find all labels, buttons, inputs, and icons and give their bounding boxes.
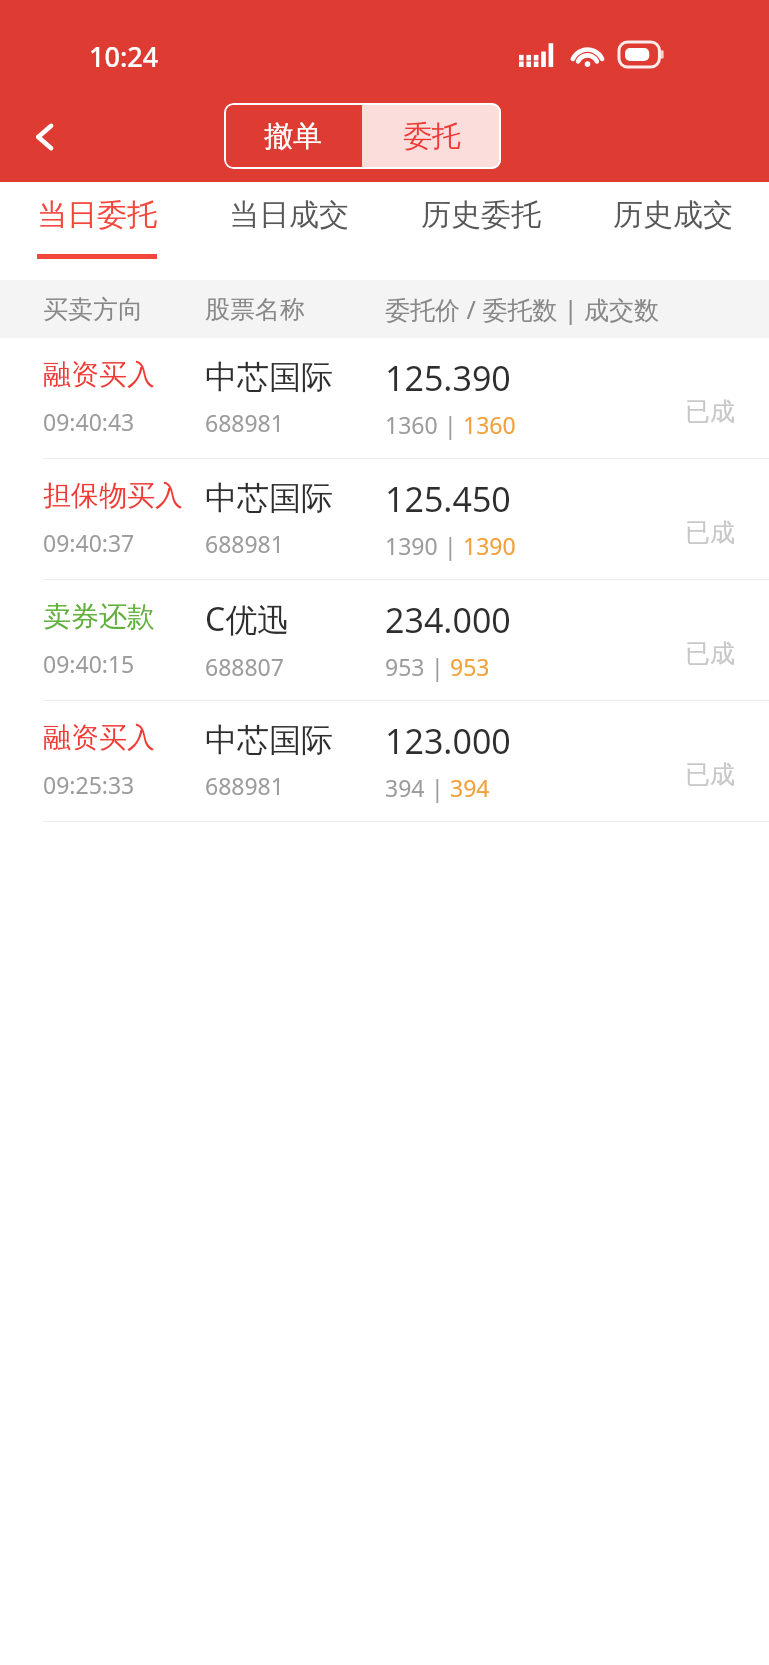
button[interactable]: 历史委托 [385, 182, 577, 280]
staticText: 已成 [685, 638, 735, 669]
staticText: 953 [385, 651, 425, 682]
staticText: 中芯国际 [205, 357, 333, 397]
staticText: 已成 [685, 517, 735, 548]
button[interactable]: 撤单 [224, 103, 362, 169]
staticText: 1360 [385, 409, 438, 440]
button[interactable]: 当日委托 [0, 182, 193, 280]
staticText: 688981 [205, 528, 284, 559]
staticText: 当日成交 [229, 196, 349, 234]
staticText: 买卖方向 [43, 294, 143, 325]
staticText: 已成 [685, 396, 735, 427]
staticText: 中芯国际 [205, 720, 333, 760]
staticText: 123.000 [385, 718, 511, 764]
staticText: 1390 [463, 530, 516, 561]
staticText: 当日委托 [37, 196, 157, 234]
button[interactable]: 融资买入 [0, 701, 769, 821]
staticText: 394 [450, 772, 490, 803]
button[interactable]: 历史成交 [577, 182, 769, 280]
button[interactable]: Back [16, 108, 74, 166]
staticText: 股票名称 [205, 294, 305, 325]
staticText: | [438, 409, 463, 440]
staticText: 125.390 [385, 355, 511, 401]
staticText: | [438, 530, 463, 561]
staticText: 1390 [385, 530, 438, 561]
staticText: 历史成交 [613, 196, 733, 234]
staticText: 953 [450, 651, 490, 682]
staticText: 688981 [205, 770, 284, 801]
staticText: 中芯国际 [205, 478, 333, 518]
staticText: 担保物买入 [43, 478, 183, 513]
button[interactable]: 卖券还款 [0, 580, 769, 700]
staticText: 125.450 [385, 476, 511, 522]
staticText: 委托 [403, 118, 461, 155]
staticText: 688807 [205, 651, 284, 682]
staticText: 1360 [463, 409, 516, 440]
button[interactable]: 委托 [362, 103, 501, 169]
staticText: 融资买入 [43, 357, 155, 392]
staticText: 卖券还款 [43, 599, 155, 634]
staticText: 09:40:37 [43, 527, 135, 558]
button[interactable]: 当日成交 [193, 182, 385, 280]
button[interactable]: 担保物买入 [0, 459, 769, 579]
staticText: C优迅 [205, 597, 290, 641]
staticText: 394 [385, 772, 425, 803]
staticText: 09:40:15 [43, 648, 135, 679]
staticText: 09:40:43 [43, 406, 135, 437]
staticText: 234.000 [385, 597, 511, 643]
staticText: 融资买入 [43, 720, 155, 755]
staticText: 10:24 [89, 38, 159, 75]
staticText: 已成 [685, 759, 735, 790]
staticText: 09:25:33 [43, 769, 135, 800]
staticText: 撤单 [264, 118, 322, 155]
staticText: 688981 [205, 407, 284, 438]
staticText: 历史委托 [421, 196, 541, 234]
staticText: | [425, 772, 450, 803]
staticText: | [425, 651, 450, 682]
staticText: 委托价 / 委托数 | 成交数 [385, 292, 660, 326]
button[interactable]: 融资买入 [0, 338, 769, 458]
